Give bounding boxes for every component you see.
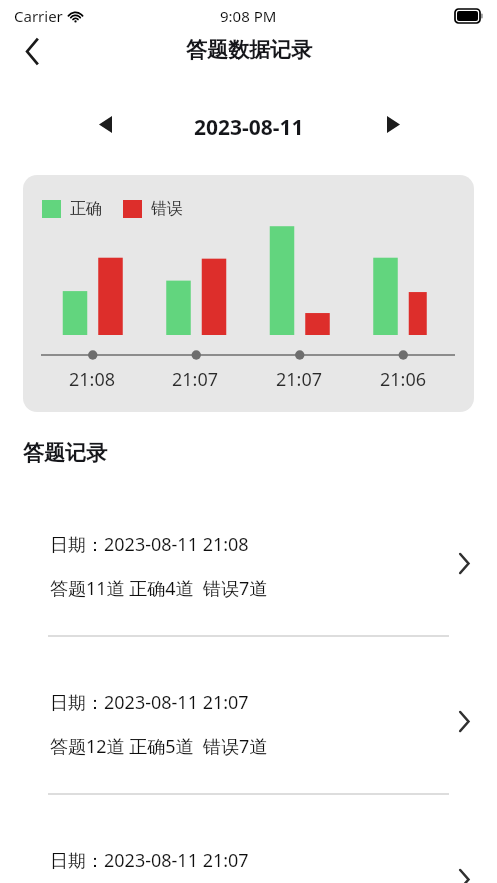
button[interactable]: 日期：2023-08-11 21:08 [0,518,497,608]
button[interactable]: Back [9,28,55,74]
staticText: 答题记录 [23,440,107,466]
staticText: Carrier [14,6,63,26]
staticText: 9:08 PM [220,6,277,26]
staticText: 21:07 [276,367,323,392]
button[interactable]: 日期：2023-08-11 21:07 [0,676,497,766]
staticText: 日期：2023-08-11 21:07 [50,848,249,873]
staticText: 正确 [70,199,102,219]
staticText: 答题12道 正确5道 错误7道 [50,734,268,759]
staticText: 21:08 [69,367,116,392]
staticText: 日期：2023-08-11 21:07 [50,690,249,715]
button[interactable]: Previous day [84,103,126,145]
button[interactable]: Next day [372,103,414,145]
staticText: 答题11道 正确4道 错误7道 [50,576,268,601]
staticText: 错误 [151,199,183,219]
staticText: 21:06 [380,367,427,392]
button[interactable]: 日期：2023-08-11 21:07 [0,834,497,883]
staticText: 2023-08-11 [194,113,304,142]
staticText: 日期：2023-08-11 21:08 [50,532,249,557]
staticText: 21:07 [172,367,219,392]
staticText: 答题数据记录 [186,37,312,63]
